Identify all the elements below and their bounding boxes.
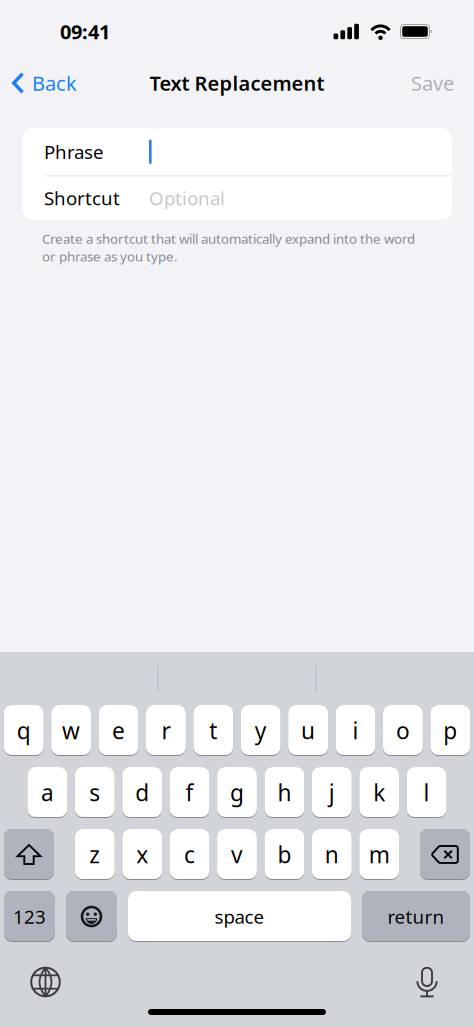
staticText: f — [186, 777, 194, 807]
staticText: y — [255, 715, 267, 745]
staticText: c — [184, 839, 195, 869]
button[interactable]: s — [75, 767, 115, 818]
staticText: Optional — [149, 186, 225, 210]
button[interactable]: t — [193, 705, 233, 756]
staticText: n — [325, 839, 339, 869]
staticText: return — [387, 904, 444, 929]
button[interactable]: Shortcut — [22, 176, 452, 220]
button[interactable]: a — [27, 767, 67, 818]
staticText: s — [89, 777, 100, 807]
staticText: o — [396, 715, 410, 745]
button[interactable]: Emoji — [66, 891, 117, 942]
button[interactable]: o — [383, 705, 423, 756]
button[interactable]: n — [312, 829, 352, 880]
staticText: q — [17, 715, 31, 745]
button[interactable]: Delete — [420, 829, 470, 880]
button[interactable]: Shift — [4, 829, 54, 880]
button[interactable]: x — [122, 829, 162, 880]
button[interactable]: q — [4, 705, 44, 756]
staticText: e — [112, 715, 125, 745]
button[interactable]: return — [362, 891, 470, 942]
staticText: 123 — [13, 904, 46, 929]
staticText: Text Replacement — [149, 70, 324, 96]
staticText: w — [62, 715, 80, 745]
button[interactable]: p — [430, 705, 470, 756]
staticText: j — [329, 777, 335, 807]
button[interactable]: j — [312, 767, 352, 818]
staticText: k — [373, 777, 385, 807]
staticText: g — [230, 777, 244, 807]
button[interactable]: i — [336, 705, 375, 756]
button[interactable]: Back — [0, 70, 77, 96]
button[interactable]: e — [99, 705, 138, 756]
button[interactable]: b — [264, 829, 304, 880]
button[interactable]: Phrase — [22, 128, 452, 175]
button[interactable]: Next keyboard — [0, 966, 61, 997]
button[interactable]: f — [170, 767, 210, 818]
button[interactable]: m — [359, 829, 399, 880]
staticText: Shortcut — [44, 186, 120, 210]
staticText: Create a shortcut that will automaticall… — [42, 230, 415, 265]
button[interactable]: Save — [411, 70, 474, 96]
staticText: t — [209, 715, 217, 745]
staticText: z — [89, 839, 100, 869]
button[interactable]: r — [146, 705, 186, 756]
button[interactable]: space — [128, 891, 351, 942]
button[interactable]: d — [122, 767, 162, 818]
staticText: h — [277, 777, 291, 807]
button[interactable]: c — [170, 829, 210, 880]
staticText: d — [135, 777, 149, 807]
staticText: Back — [32, 70, 77, 96]
button[interactable]: y — [241, 705, 281, 756]
button[interactable]: k — [359, 767, 399, 818]
staticText: i — [352, 715, 358, 745]
staticText: Save — [411, 70, 454, 96]
button[interactable]: v — [217, 829, 257, 880]
button[interactable]: l — [407, 767, 447, 818]
button[interactable]: 123 — [4, 891, 55, 942]
staticText: a — [41, 777, 54, 807]
staticText: 09:41 — [60, 18, 110, 45]
staticText: l — [424, 777, 430, 807]
button[interactable]: h — [264, 767, 304, 818]
staticText: Phrase — [44, 139, 104, 164]
staticText: p — [443, 715, 457, 745]
staticText: b — [277, 839, 291, 869]
button[interactable]: g — [217, 767, 257, 818]
staticText: v — [231, 839, 243, 869]
button[interactable]: Dictation — [416, 966, 474, 998]
staticText: space — [214, 904, 264, 929]
button[interactable]: u — [288, 705, 328, 756]
staticText: x — [136, 839, 148, 869]
staticText: r — [161, 715, 170, 745]
staticText: u — [301, 715, 315, 745]
button[interactable]: z — [75, 829, 115, 880]
staticText: m — [369, 839, 390, 869]
button[interactable]: w — [51, 705, 91, 756]
